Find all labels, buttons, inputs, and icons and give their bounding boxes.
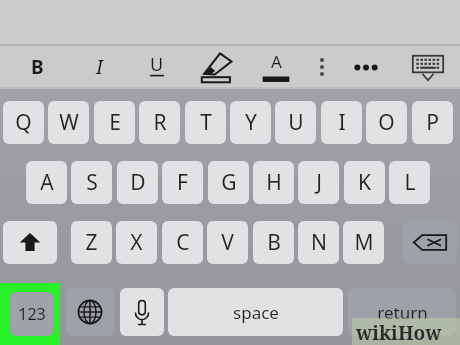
staticText: K bbox=[358, 168, 371, 197]
button[interactable]: J bbox=[298, 161, 339, 204]
staticText: P bbox=[426, 108, 439, 137]
staticText: I bbox=[96, 54, 103, 80]
staticText: T bbox=[200, 108, 212, 137]
button[interactable]: Backspace bbox=[403, 221, 457, 264]
button[interactable]: Z bbox=[71, 221, 112, 264]
staticText: V bbox=[221, 228, 234, 257]
staticText: O bbox=[378, 108, 395, 137]
staticText: N bbox=[311, 228, 327, 257]
button[interactable]: space bbox=[168, 288, 343, 336]
staticText: R bbox=[153, 108, 167, 137]
staticText: How bbox=[398, 320, 442, 345]
button[interactable]: A bbox=[26, 161, 67, 204]
button[interactable]: B bbox=[253, 221, 294, 264]
staticText: B bbox=[267, 228, 281, 257]
button[interactable]: F bbox=[162, 161, 203, 204]
staticText: X bbox=[130, 228, 143, 257]
button[interactable]: H bbox=[253, 161, 294, 204]
button[interactable]: B bbox=[22, 52, 52, 82]
staticText: F bbox=[177, 168, 188, 197]
staticText: Q bbox=[15, 108, 32, 137]
button[interactable]: More bbox=[348, 52, 384, 82]
staticText: return bbox=[377, 301, 428, 324]
staticText: S bbox=[86, 168, 98, 197]
staticText: U bbox=[288, 108, 304, 137]
staticText: A bbox=[40, 168, 54, 197]
button[interactable]: G bbox=[208, 161, 249, 204]
staticText: wiki bbox=[356, 320, 398, 345]
button[interactable]: T bbox=[185, 101, 226, 144]
button[interactable]: R bbox=[139, 101, 180, 144]
staticText: I bbox=[338, 108, 346, 137]
staticText: C bbox=[176, 228, 190, 257]
staticText: U bbox=[150, 52, 164, 77]
button[interactable]: K bbox=[344, 161, 385, 204]
button[interactable]: return bbox=[348, 288, 456, 336]
button[interactable]: P bbox=[412, 101, 453, 144]
button[interactable]: U bbox=[275, 101, 316, 144]
button[interactable]: L bbox=[389, 161, 430, 204]
button[interactable]: Hide keyboard bbox=[408, 50, 448, 86]
button[interactable]: More options bbox=[310, 52, 334, 82]
staticText: 123 bbox=[18, 303, 46, 325]
staticText: A bbox=[271, 50, 282, 73]
button[interactable]: Shift bbox=[3, 221, 57, 264]
button[interactable]: E bbox=[94, 101, 135, 144]
button[interactable]: U bbox=[142, 52, 172, 82]
button[interactable]: S bbox=[71, 161, 112, 204]
button[interactable]: Highlight bbox=[198, 50, 236, 84]
staticText: D bbox=[130, 168, 146, 197]
button[interactable]: N bbox=[298, 221, 339, 264]
staticText: G bbox=[221, 168, 237, 197]
button[interactable]: C bbox=[162, 221, 203, 264]
staticText: J bbox=[316, 168, 322, 197]
button[interactable]: V bbox=[207, 221, 248, 264]
staticText: E bbox=[109, 108, 121, 137]
staticText: B bbox=[31, 54, 44, 80]
button[interactable]: Voice input bbox=[120, 288, 164, 336]
button[interactable]: Q bbox=[3, 101, 44, 144]
button[interactable]: 123 bbox=[10, 292, 54, 336]
staticText: H bbox=[266, 168, 282, 197]
button[interactable]: O bbox=[366, 101, 407, 144]
staticText: M bbox=[354, 228, 374, 257]
button[interactable]: Text color bbox=[258, 50, 294, 84]
staticText: L bbox=[404, 168, 416, 197]
button[interactable]: Change keyboard bbox=[66, 288, 114, 336]
button[interactable]: D bbox=[117, 161, 158, 204]
button[interactable]: I bbox=[84, 52, 114, 82]
staticText: space bbox=[233, 301, 279, 324]
button[interactable]: M bbox=[343, 221, 384, 264]
button[interactable]: Y bbox=[230, 101, 271, 144]
staticText: W bbox=[59, 108, 79, 137]
button[interactable]: X bbox=[116, 221, 157, 264]
button[interactable]: I bbox=[321, 101, 362, 144]
staticText: Z bbox=[85, 228, 98, 257]
button[interactable]: W bbox=[48, 101, 89, 144]
staticText: Y bbox=[245, 108, 257, 137]
